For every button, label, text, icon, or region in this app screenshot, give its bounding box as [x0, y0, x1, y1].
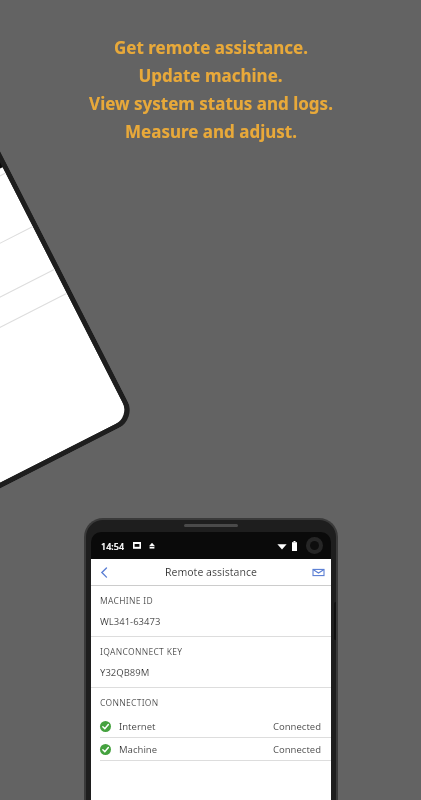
button[interactable]: Machine — [91, 738, 331, 760]
staticText: View system status and logs. — [89, 92, 333, 115]
staticText: IQANCONNECT KEY — [100, 646, 183, 658]
button[interactable]: IQANCONNECT KEY — [91, 637, 331, 687]
staticText: Y32QB89M — [100, 666, 150, 679]
button[interactable]: Internet — [91, 715, 331, 737]
staticText: MACHINE ID — [100, 595, 154, 607]
staticText: Get remote assistance. — [114, 36, 308, 59]
staticText: WL341-63473 — [100, 615, 161, 628]
staticText: Update machine. — [138, 64, 283, 87]
staticText: Remote assistance — [165, 565, 257, 579]
staticText: Connected — [273, 743, 322, 756]
staticText: 14:54 — [101, 540, 125, 552]
staticText: CONNECTION — [100, 697, 159, 709]
button[interactable]: Back — [91, 559, 117, 585]
staticText: Internet — [119, 720, 156, 733]
button[interactable]: Email — [305, 559, 331, 585]
staticText: Connected — [273, 720, 322, 733]
staticText: Machine — [119, 743, 158, 756]
staticText: Measure and adjust. — [125, 120, 297, 143]
button[interactable]: MACHINE ID — [91, 586, 331, 636]
